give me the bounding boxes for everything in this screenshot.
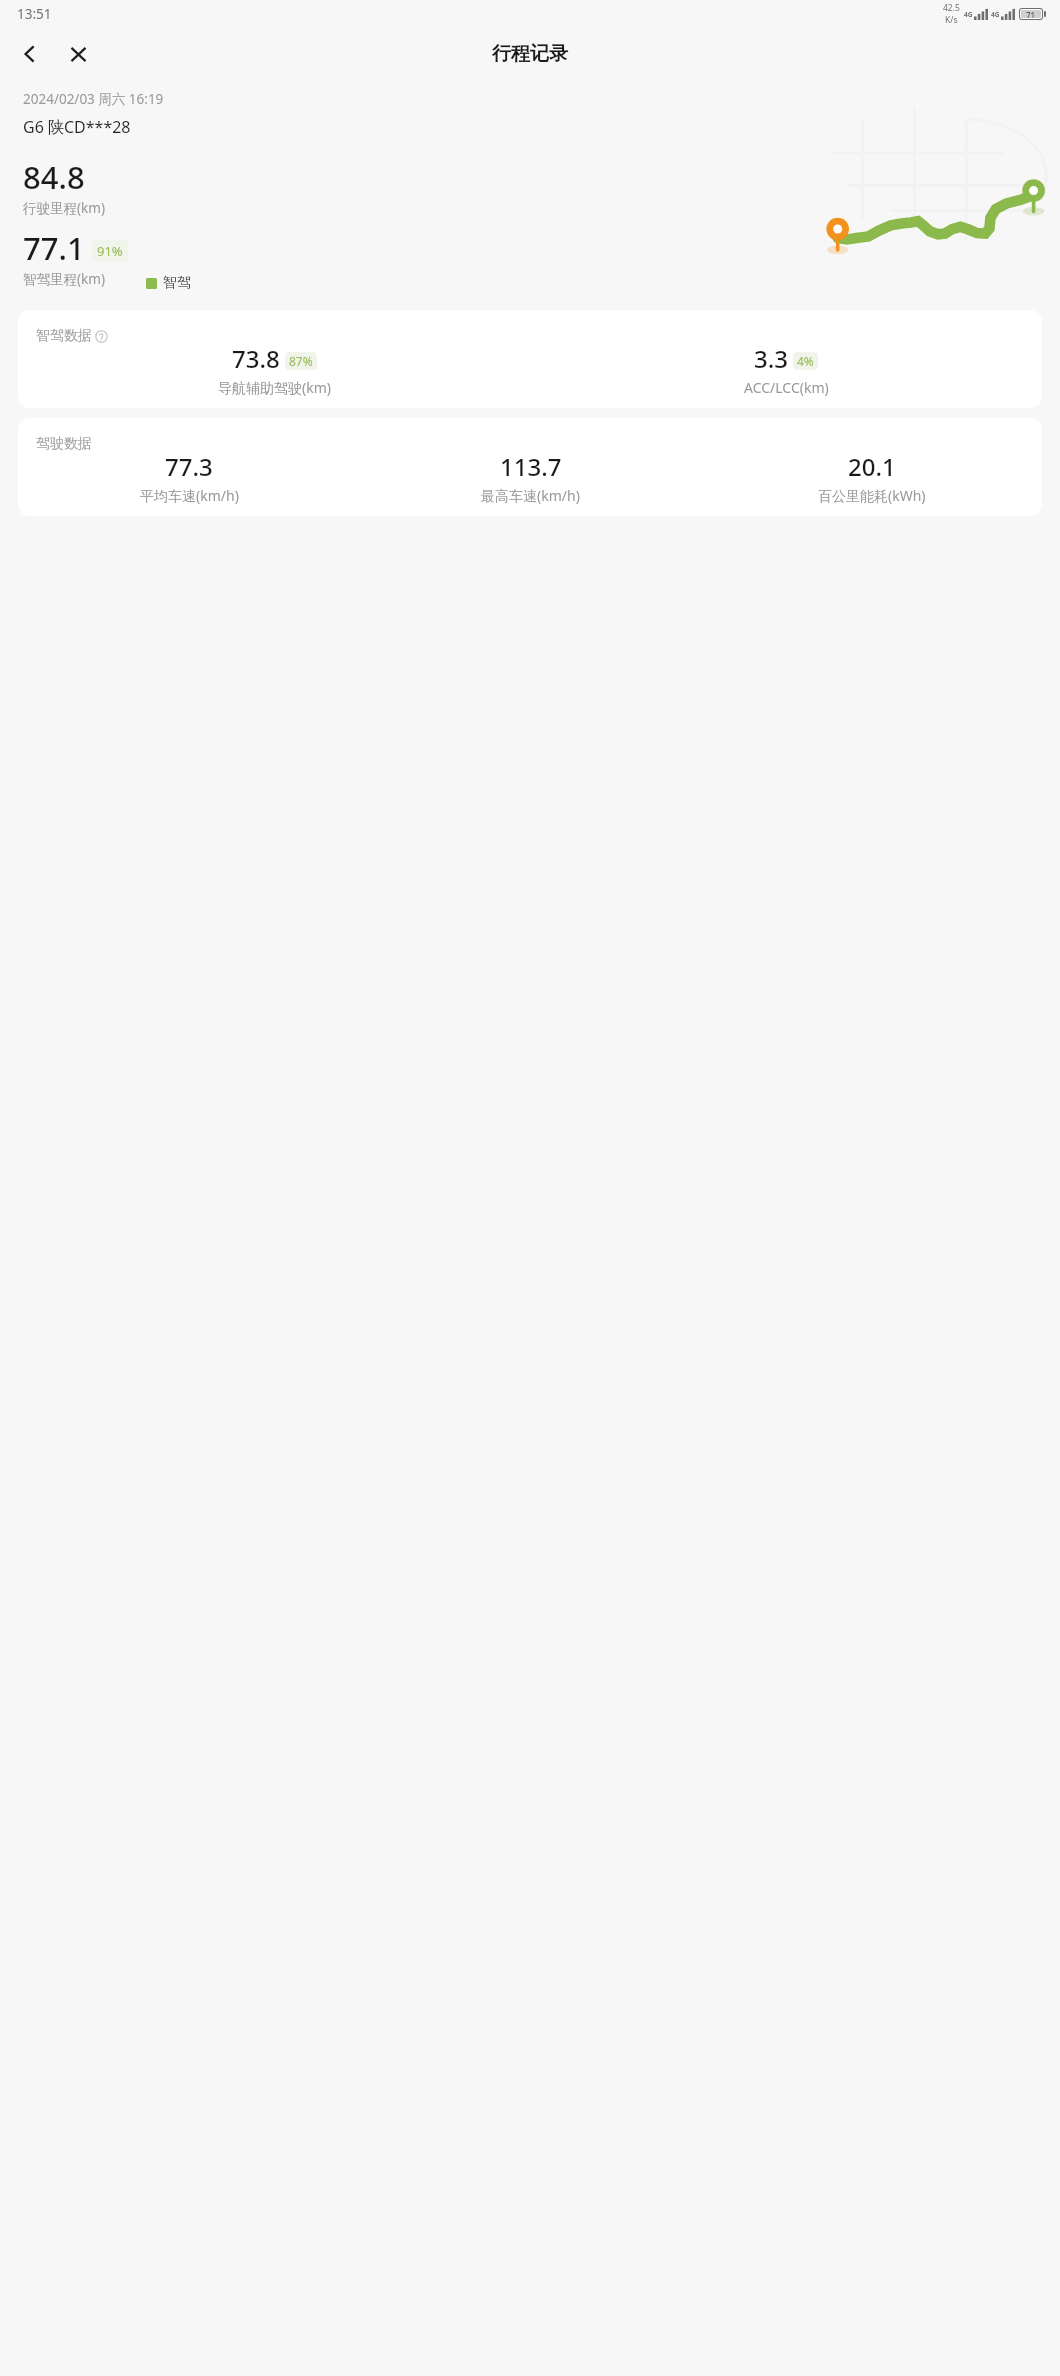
staticText: 智驾数据 — [36, 327, 92, 345]
staticText: 4G — [964, 10, 973, 19]
staticText: 13:51 — [17, 5, 52, 23]
staticText: 行程记录 — [492, 42, 568, 66]
staticText: 智驾里程(km) — [23, 270, 105, 288]
staticText: 20.1 — [848, 450, 896, 483]
staticText: 91% — [97, 242, 123, 260]
staticText: 百公里能耗(kWh) — [818, 486, 926, 505]
button[interactable]: Close — [56, 32, 100, 76]
staticText: 4% — [797, 353, 814, 369]
button[interactable]: Back — [8, 32, 52, 76]
staticText: ACC/LCC(km) — [744, 378, 829, 397]
staticText: 77.1 — [23, 227, 85, 269]
button[interactable]: 智驾数据 — [18, 310, 1042, 408]
staticText: 73.8 — [232, 342, 280, 375]
staticText: 113.7 — [500, 450, 562, 483]
staticText: 智驾 — [163, 274, 191, 292]
staticText: 4G — [991, 10, 1000, 19]
staticText: 87% — [289, 353, 313, 369]
staticText: 行驶里程(km) — [23, 199, 105, 217]
staticText: 导航辅助驾驶(km) — [218, 378, 331, 397]
staticText: 最高车速(km/h) — [481, 486, 580, 505]
staticText: 平均车速(km/h) — [140, 486, 239, 505]
button[interactable]: 驾驶数据 — [18, 418, 1042, 516]
staticText: 77.3 — [165, 450, 213, 483]
staticText: 84.8 — [23, 156, 85, 198]
staticText: K/s — [945, 14, 958, 26]
staticText: G6 陕CD***28 — [23, 116, 131, 138]
staticText: 42.5 — [943, 2, 960, 14]
staticText: 71 — [1026, 10, 1036, 18]
staticText: 驾驶数据 — [36, 435, 92, 453]
staticText: 3.3 — [754, 342, 788, 375]
staticText: 2024/02/03 周六 16:19 — [23, 90, 164, 108]
